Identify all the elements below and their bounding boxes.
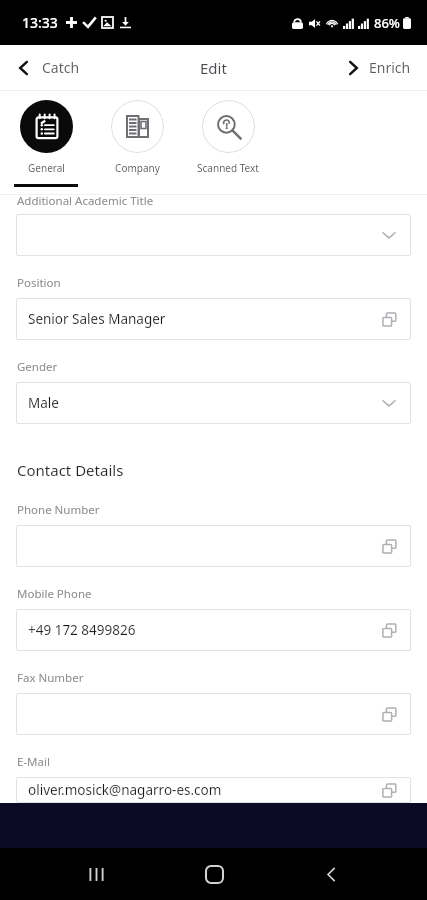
- button[interactable]: Home: [192, 852, 236, 896]
- staticText: Edit: [200, 58, 227, 78]
- staticText: Additional Academic Title: [17, 193, 154, 206]
- staticText: Catch: [42, 58, 80, 77]
- other: Copy: [379, 780, 399, 800]
- button[interactable]: Copy: [16, 693, 411, 735]
- staticText: Male: [28, 394, 59, 412]
- button[interactable]: Scanned Text: [196, 100, 260, 175]
- staticText: Scanned Text: [197, 161, 259, 175]
- button[interactable]: +49 172 8499826: [16, 609, 411, 651]
- staticText: Fax Number: [17, 670, 84, 686]
- other: Expand: [379, 225, 399, 245]
- button[interactable]: Back: [309, 852, 353, 896]
- button[interactable]: Catch: [0, 50, 94, 85]
- staticText: Position: [17, 275, 61, 291]
- button[interactable]: Senior Sales Manager: [16, 298, 411, 340]
- button[interactable]: oliver.mosick@nagarro-es.com: [16, 777, 411, 803]
- staticText: oliver.mosick@nagarro-es.com: [28, 781, 222, 799]
- button[interactable]: Enrich: [331, 50, 427, 85]
- other: Copy: [379, 704, 399, 724]
- staticText: 13:33: [22, 13, 58, 32]
- staticText: General: [28, 161, 65, 175]
- staticText: Phone Number: [17, 502, 100, 518]
- other: Copy: [379, 536, 399, 556]
- other: Expand: [379, 393, 399, 413]
- staticText: Gender: [17, 359, 58, 375]
- staticText: Enrich: [369, 58, 411, 77]
- button[interactable]: General: [14, 100, 78, 187]
- button[interactable]: Copy: [16, 525, 411, 567]
- other: Copy: [379, 620, 399, 640]
- staticText: 86%: [374, 14, 400, 32]
- button[interactable]: Expand: [16, 214, 411, 256]
- staticText: +49 172 8499826: [28, 621, 136, 639]
- staticText: Company: [115, 161, 160, 175]
- button[interactable]: Male: [16, 382, 411, 424]
- button[interactable]: Recent apps: [74, 852, 118, 896]
- staticText: Contact Details: [17, 460, 124, 480]
- staticText: E-Mail: [17, 754, 50, 770]
- staticText: Mobile Phone: [17, 586, 92, 602]
- other: Copy: [379, 309, 399, 329]
- button[interactable]: Company: [105, 100, 169, 175]
- staticText: Senior Sales Manager: [28, 310, 166, 328]
